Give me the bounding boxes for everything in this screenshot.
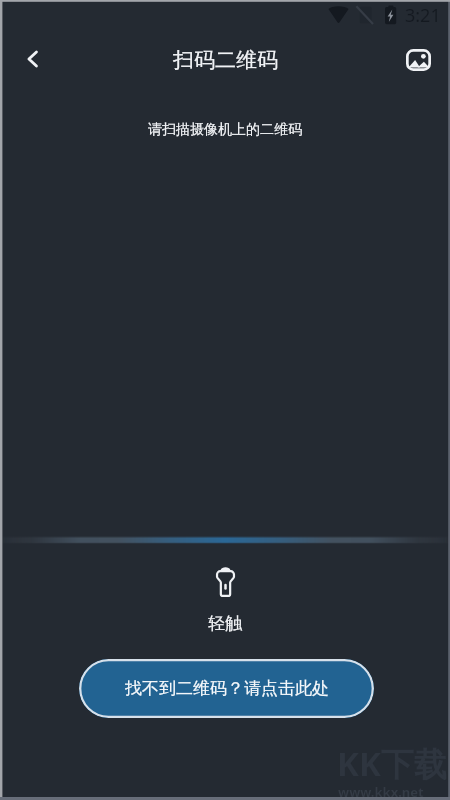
staticText: www.kkx.net	[338, 783, 424, 800]
staticText: 找不到二维码？请点击此处	[125, 678, 329, 699]
button[interactable]: Toggle flashlight	[185, 561, 265, 634]
staticText: 3:21	[405, 3, 441, 28]
staticText: 请扫描摄像机上的二维码	[0, 121, 450, 139]
button[interactable]: Open gallery	[398, 40, 438, 80]
button[interactable]: Back	[14, 42, 50, 78]
button[interactable]: 找不到二维码？请点击此处	[79, 659, 374, 718]
staticText: KK下载	[337, 741, 447, 786]
staticText: 扫码二维码	[173, 47, 278, 73]
staticText: 轻触	[185, 613, 265, 634]
